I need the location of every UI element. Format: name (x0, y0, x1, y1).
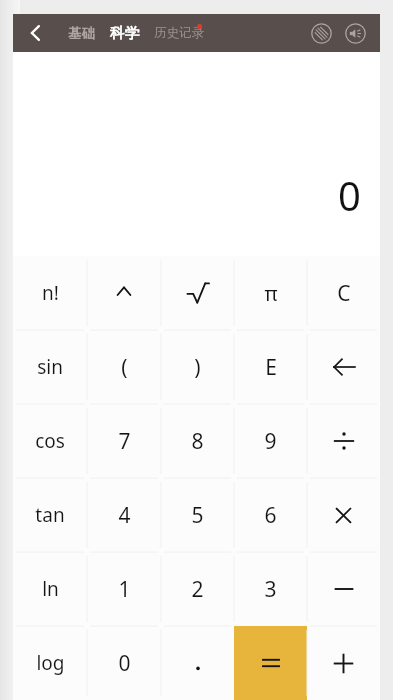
button[interactable]: C (307, 256, 380, 330)
staticText: ( (121, 353, 128, 382)
staticText: 4 (118, 501, 131, 530)
button[interactable] (307, 330, 380, 404)
staticText: 历史记录 (154, 25, 204, 41)
staticText: 科学 (110, 24, 139, 42)
staticText: sin (37, 354, 63, 380)
button[interactable]: ) (161, 330, 234, 404)
button[interactable] (307, 626, 380, 700)
button[interactable]: 6 (234, 478, 307, 552)
staticText: 0 (338, 168, 361, 222)
button[interactable]: π (234, 256, 307, 330)
staticText: 0 (118, 649, 131, 678)
button[interactable]: 9 (234, 404, 307, 478)
button[interactable]: 3 (234, 552, 307, 626)
button[interactable]: ln (13, 552, 87, 626)
button[interactable]: cos (13, 404, 87, 478)
staticText: 9 (264, 427, 277, 456)
staticText: 1 (118, 575, 131, 604)
staticText: 8 (191, 427, 204, 456)
button[interactable] (161, 256, 234, 330)
button[interactable]: 科学 (107, 18, 142, 48)
button[interactable] (307, 404, 380, 478)
staticText: tan (35, 502, 65, 528)
button[interactable]: 0 (87, 626, 161, 700)
staticText: 2 (191, 575, 204, 604)
button[interactable] (234, 626, 307, 700)
staticText: ) (194, 353, 201, 382)
staticText: 7 (118, 427, 131, 456)
staticText: ln (42, 576, 59, 602)
button[interactable]: tan (13, 478, 87, 552)
button[interactable]: 5 (161, 478, 234, 552)
staticText: 5 (191, 501, 204, 530)
button[interactable]: sin (13, 330, 87, 404)
button[interactable]: Theme (306, 18, 336, 48)
button[interactable]: Sound (340, 18, 370, 48)
button[interactable]: 基础 (65, 19, 98, 48)
staticText: log (36, 650, 65, 676)
button[interactable]: log (13, 626, 87, 700)
staticText: 6 (264, 501, 277, 530)
button[interactable] (161, 626, 234, 700)
button[interactable] (87, 256, 161, 330)
staticText: cos (35, 428, 65, 454)
button[interactable]: Back (13, 14, 59, 52)
button[interactable]: 8 (161, 404, 234, 478)
button[interactable]: E (234, 330, 307, 404)
staticText: 基础 (68, 25, 95, 42)
button[interactable]: 历史记录 (151, 19, 207, 47)
button[interactable]: 2 (161, 552, 234, 626)
button[interactable] (307, 552, 380, 626)
staticText: 3 (264, 575, 277, 604)
button[interactable]: 7 (87, 404, 161, 478)
button[interactable]: 4 (87, 478, 161, 552)
staticText: E (265, 353, 277, 382)
button[interactable]: 1 (87, 552, 161, 626)
button[interactable]: n! (13, 256, 87, 330)
staticText: π (264, 280, 278, 307)
staticText: n! (42, 280, 59, 306)
button[interactable]: ( (87, 330, 161, 404)
staticText: C (337, 279, 351, 308)
button[interactable] (307, 478, 380, 552)
